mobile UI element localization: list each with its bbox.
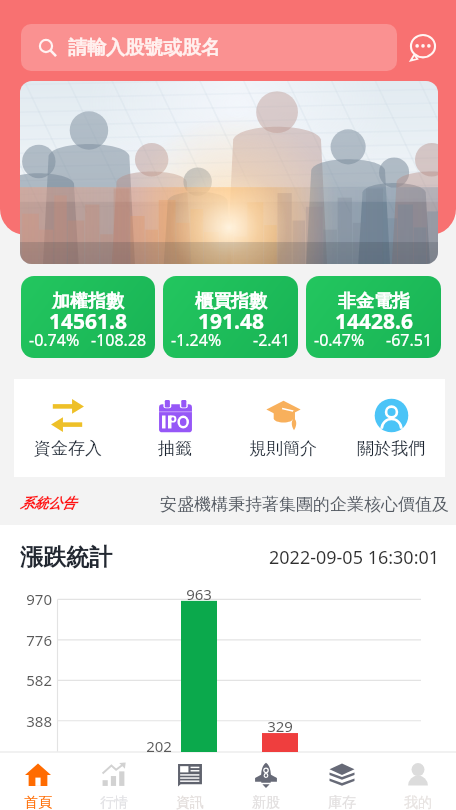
staticText: 規則簡介 (249, 438, 317, 459)
button[interactable]: 櫃買指數 (163, 276, 298, 358)
staticText: 關於我們 (357, 438, 425, 459)
staticText: 安盛機構秉持著集團的企業核心價值及 (160, 494, 449, 515)
staticText: -0.47% (314, 329, 365, 351)
button[interactable]: 加權指數 (21, 276, 155, 358)
button[interactable]: 規則簡介 (229, 379, 337, 477)
staticText: 首頁 (24, 794, 52, 810)
staticText: 14428.6 (335, 307, 413, 336)
staticText: 582 (20, 670, 52, 690)
staticText: 非金電指 (338, 290, 410, 313)
staticText: 加權指數 (52, 290, 124, 313)
staticText: 191.48 (198, 307, 264, 336)
staticText: 櫃買指數 (195, 290, 267, 313)
staticText: 資金存入 (34, 438, 102, 459)
button[interactable]: 非金電指 (306, 276, 441, 358)
staticText: 我的 (404, 794, 432, 810)
button[interactable] (20, 81, 438, 264)
staticText: 2022-09-05 16:30:01 (269, 545, 440, 570)
staticText: -108.28 (91, 329, 147, 351)
button[interactable]: 首頁 (0, 753, 76, 810)
staticText: 新股 (252, 794, 280, 810)
button[interactable]: 請輸入股號或股名 (21, 24, 397, 71)
staticText: 漲跌統計 (20, 543, 112, 572)
staticText: 388 (20, 711, 52, 731)
staticText: -2.41 (253, 329, 290, 351)
staticText: 963 (181, 584, 217, 604)
staticText: -1.24% (171, 329, 222, 351)
button[interactable]: 抽籤 (121, 379, 229, 477)
staticText: -67.51 (386, 329, 433, 351)
staticText: 資訊 (176, 794, 204, 810)
button[interactable]: 系統公告 (0, 484, 456, 524)
staticText: 970 (20, 589, 52, 609)
staticText: 776 (20, 630, 52, 650)
staticText: 庫存 (328, 794, 356, 810)
staticText: 202 (141, 736, 177, 756)
button[interactable]: Chat / messages (397, 21, 449, 73)
button[interactable]: 關於我們 (337, 379, 445, 477)
staticText: 329 (262, 716, 298, 736)
staticText: 14561.8 (49, 307, 127, 336)
staticText: -0.74% (29, 329, 80, 351)
button[interactable]: 庫存 (304, 753, 380, 810)
staticText: 行情 (100, 794, 128, 810)
staticText: 抽籤 (158, 438, 192, 459)
staticText: 請輸入股號或股名 (68, 36, 220, 60)
button[interactable]: 資訊 (152, 753, 228, 810)
staticText: 系統公告 (20, 495, 76, 513)
button[interactable]: 我的 (380, 753, 456, 810)
button[interactable]: 行情 (76, 753, 152, 810)
button[interactable]: 新股 (228, 753, 304, 810)
button[interactable]: 資金存入 (14, 379, 121, 477)
